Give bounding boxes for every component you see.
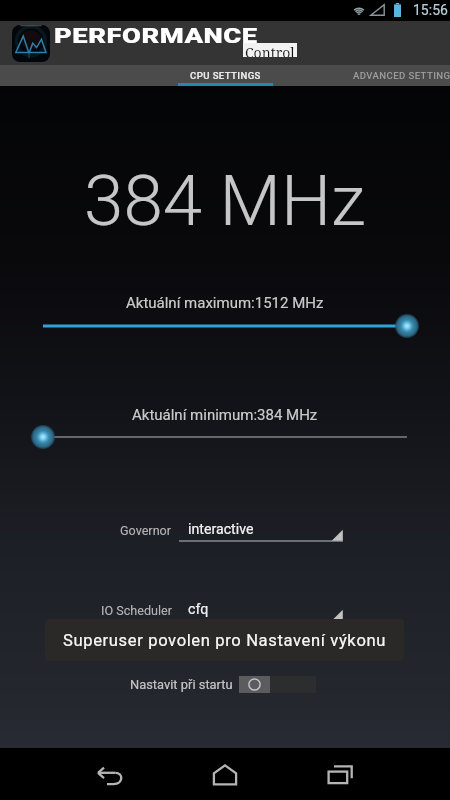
button[interactable]: CPU SETTINGS: [178, 65, 273, 86]
staticText: Nastavit při startu: [130, 677, 233, 692]
staticText: Superuser povolen pro Nastavení výkonu: [63, 631, 387, 650]
staticText: interactive: [188, 521, 254, 538]
staticText: Control: [245, 43, 295, 57]
button[interactable]: Home: [193, 748, 257, 800]
button[interactable]: ADVANCED SETTINGS: [273, 65, 450, 86]
button[interactable]: Aktuální minimum:384 MHz: [0, 424, 450, 450]
staticText: Aktuální maximum:1512 MHz: [126, 294, 324, 312]
staticText: CPU SETTINGS: [190, 70, 261, 81]
button[interactable]: Performance Control icon: [12, 25, 50, 62]
button[interactable]: Back: [78, 748, 142, 800]
staticText: ADVANCED SETTINGS: [353, 70, 450, 81]
staticText: PERFORMANCE: [54, 24, 258, 49]
button[interactable]: IO Scheduler: [179, 591, 343, 627]
button[interactable]: Aktuální maximum:1512 MHz: [0, 313, 450, 339]
staticText: Governor: [120, 523, 172, 538]
button[interactable]: Nastavit při startu: [239, 676, 316, 693]
staticText: cfq: [188, 601, 209, 618]
button[interactable]: Governor: [179, 511, 343, 547]
staticText: Aktuální minimum:384 MHz: [132, 406, 318, 424]
staticText: IO Scheduler: [101, 603, 172, 618]
button[interactable]: Recent apps: [308, 748, 372, 800]
staticText: 384 MHz: [84, 159, 366, 242]
staticText: 15:56: [413, 2, 448, 18]
